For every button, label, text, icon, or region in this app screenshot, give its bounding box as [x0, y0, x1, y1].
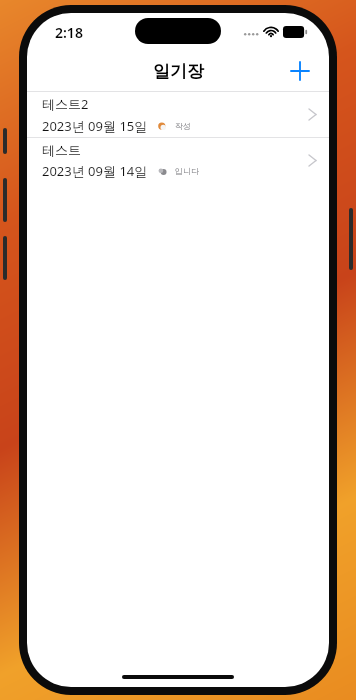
staticText: 일기장 [153, 61, 204, 82]
staticText: 2:18 [55, 23, 83, 42]
staticText: 입니다 [175, 166, 199, 176]
staticText: 테스트2 [42, 95, 89, 113]
button[interactable]: 테스트 [27, 138, 329, 183]
button[interactable]: Add diary entry [281, 52, 319, 90]
staticText: 2023년 09월 14일 [42, 162, 148, 180]
staticText: 테스트 [42, 142, 81, 158]
staticText: 작성 [175, 121, 191, 131]
staticText: 2023년 09월 15일 [42, 117, 148, 135]
button[interactable]: 테스트2 [27, 92, 329, 137]
